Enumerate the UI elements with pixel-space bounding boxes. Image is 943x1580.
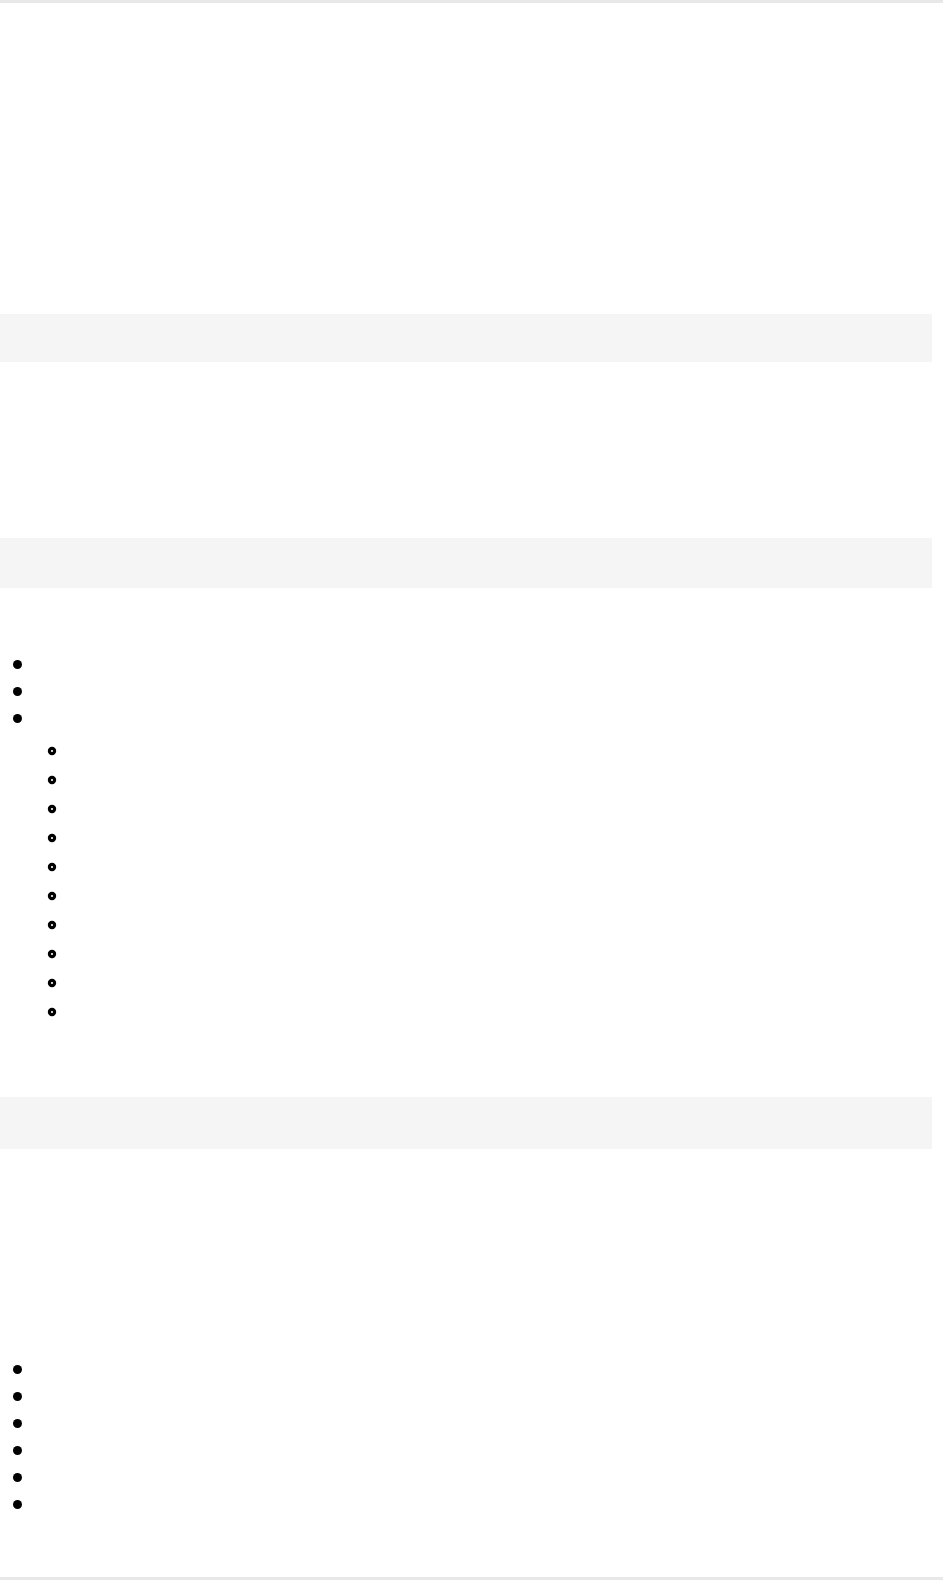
button[interactable] [0, 910, 943, 939]
button[interactable] [0, 736, 943, 765]
button[interactable] [0, 794, 943, 823]
button[interactable] [0, 1437, 943, 1464]
button[interactable] [0, 705, 943, 732]
button[interactable] [0, 823, 943, 852]
button[interactable] [0, 939, 943, 968]
button[interactable] [0, 1410, 943, 1437]
button[interactable] [0, 765, 943, 794]
button[interactable] [0, 997, 943, 1026]
button[interactable] [0, 1464, 943, 1491]
button[interactable] [0, 1383, 943, 1410]
button[interactable] [0, 651, 943, 678]
button[interactable] [0, 1491, 943, 1518]
button[interactable] [0, 852, 943, 881]
button[interactable] [0, 1356, 943, 1383]
button[interactable] [0, 881, 943, 910]
button[interactable] [0, 678, 943, 705]
button[interactable] [0, 968, 943, 997]
